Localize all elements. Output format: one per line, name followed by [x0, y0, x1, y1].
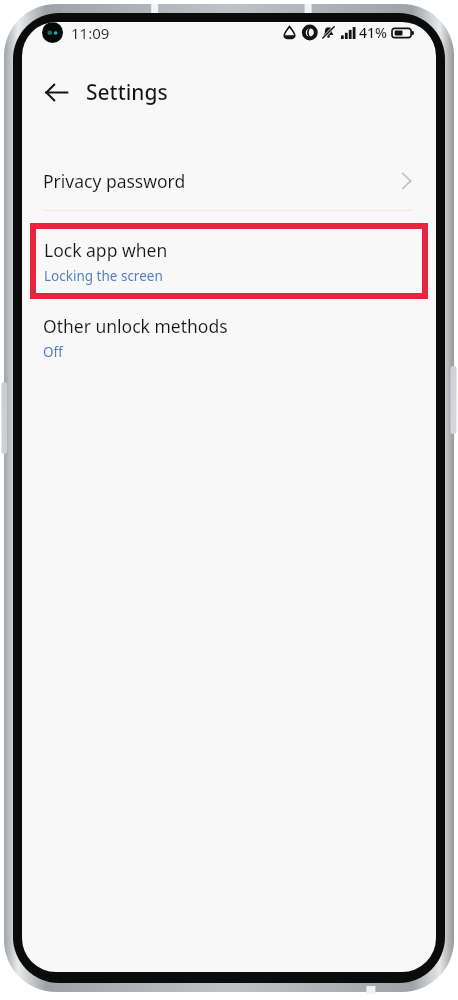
staticText: Lock app when — [44, 238, 168, 262]
staticText: Settings — [86, 78, 168, 107]
button[interactable]: Back — [34, 70, 78, 114]
staticText: Privacy password — [43, 169, 186, 193]
staticText: 41% — [359, 23, 387, 42]
staticText: Off — [43, 343, 63, 361]
button[interactable]: Privacy password — [22, 152, 436, 210]
staticText: 11:09 — [71, 23, 110, 43]
staticText: Other unlock methods — [43, 314, 228, 338]
staticText: Locking the screen — [44, 267, 163, 285]
button[interactable]: Lock app when — [33, 226, 425, 296]
button[interactable]: Other unlock methods — [22, 308, 436, 371]
